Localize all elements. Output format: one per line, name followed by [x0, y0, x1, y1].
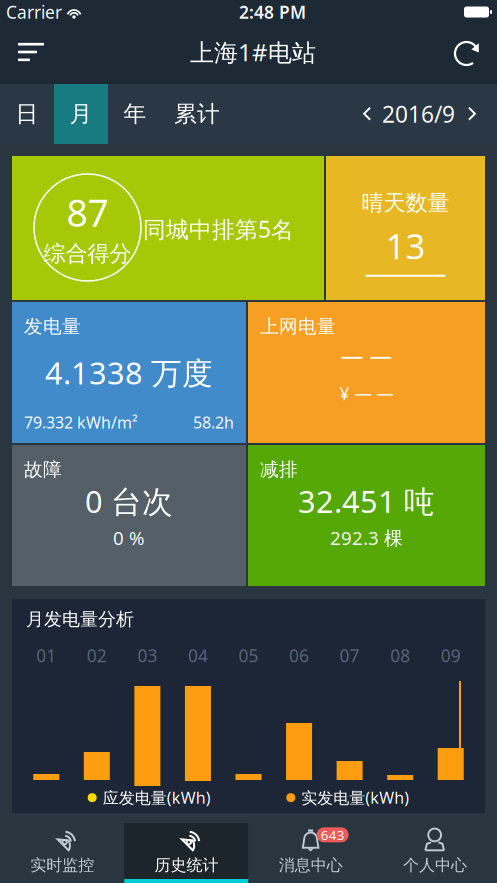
staticText: 08 — [390, 644, 410, 667]
staticText: 4.1338 万度 — [45, 352, 213, 393]
staticText: — — — [340, 340, 392, 370]
button[interactable]: 个人中心 — [373, 823, 497, 883]
staticText: Carrier — [6, 0, 62, 23]
staticText: ¥ — — — [339, 382, 393, 405]
staticText: 减排 — [260, 458, 298, 481]
staticText: 0 % — [113, 525, 145, 550]
staticText: 2016/9 — [382, 99, 455, 129]
staticText: 79.332 kWh/m² — [24, 412, 138, 433]
staticText: 上海1#电站 — [190, 36, 316, 68]
staticText: 292.3 棵 — [330, 525, 403, 550]
staticText: 综合得分 — [43, 240, 131, 268]
staticText: 58.2h — [193, 412, 234, 433]
button[interactable]: 月 — [54, 84, 108, 144]
staticText: 个人中心 — [403, 855, 467, 875]
button[interactable]: 实时监控 — [0, 823, 124, 883]
staticText: 03 — [137, 644, 157, 667]
staticText: 02 — [87, 644, 107, 667]
staticText: 01 — [36, 644, 56, 667]
staticText: 月 — [69, 100, 92, 128]
button[interactable]: Menu — [9, 30, 53, 74]
staticText: 实发电量(kWh) — [301, 787, 409, 808]
button[interactable]: Refresh — [447, 33, 491, 77]
button[interactable]: 日 — [0, 84, 54, 144]
button[interactable]: 累计 — [162, 84, 232, 144]
staticText: 0 台次 — [85, 481, 173, 521]
button[interactable]: Next month — [455, 84, 489, 144]
staticText: 实时监控 — [30, 855, 94, 875]
staticText: 晴天数量 — [361, 189, 449, 217]
staticText: 历史统计 — [154, 855, 218, 875]
staticText: 06 — [289, 644, 309, 667]
button[interactable]: Previous month — [352, 84, 382, 144]
staticText: 应发电量(kWh) — [103, 787, 211, 808]
staticText: 643 — [321, 826, 345, 844]
button[interactable]: 643 — [248, 823, 373, 883]
staticText: 故障 — [24, 458, 62, 481]
staticText: 消息中心 — [279, 855, 343, 875]
staticText: 13 — [385, 223, 425, 269]
staticText: 发电量 — [24, 315, 81, 338]
staticText: 累计 — [174, 100, 220, 128]
button[interactable]: 历史统计 — [124, 823, 248, 883]
staticText: 同城中排第5名 — [143, 214, 294, 244]
staticText: 上网电量 — [260, 315, 336, 338]
staticText: 05 — [238, 644, 258, 667]
staticText: 09 — [441, 644, 461, 667]
staticText: 年 — [123, 100, 146, 128]
staticText: 月发电量分析 — [26, 608, 134, 631]
staticText: 04 — [188, 644, 208, 667]
staticText: 87 — [66, 187, 108, 237]
button[interactable]: 年 — [108, 84, 162, 144]
staticText: 32.451 吨 — [298, 481, 435, 521]
staticText: 07 — [340, 644, 360, 667]
staticText: 日 — [15, 100, 38, 128]
staticText: 2:48 PM — [239, 0, 306, 23]
